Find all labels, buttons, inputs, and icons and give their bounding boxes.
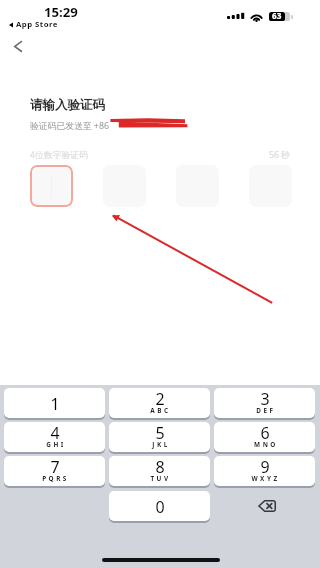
- staticText: PQRS: [42, 474, 69, 483]
- staticText: 4: [50, 422, 60, 444]
- staticText: JKL: [152, 440, 170, 449]
- staticText: ABC: [150, 406, 171, 415]
- staticText: 验证码已发送至 +86: [30, 120, 109, 132]
- staticText: DEF: [256, 406, 276, 415]
- button[interactable]: 4: [4, 422, 105, 452]
- staticText: App Store: [16, 19, 58, 30]
- staticText: TUV: [150, 474, 171, 483]
- button[interactable]: 9: [214, 456, 315, 486]
- staticText: MNO: [254, 440, 278, 449]
- staticText: 56 秒: [269, 149, 291, 161]
- staticText: 3: [260, 388, 270, 410]
- staticText: GHI: [46, 440, 66, 449]
- button[interactable]: 2: [109, 388, 210, 418]
- button[interactable]: 1: [4, 388, 105, 418]
- button[interactable]: 6: [214, 422, 315, 452]
- staticText: 4位数字验证码: [30, 149, 88, 161]
- staticText: 7: [50, 456, 60, 478]
- staticText: 6: [260, 422, 270, 444]
- staticText: WXYZ: [251, 474, 280, 483]
- staticText: 8: [155, 456, 165, 478]
- staticText: 1: [50, 393, 60, 415]
- staticText: 15:29: [44, 3, 78, 21]
- button[interactable]: 8: [109, 456, 210, 486]
- button[interactable]: 3: [214, 388, 315, 418]
- staticText: 63: [272, 10, 282, 19]
- button[interactable]: 5: [109, 422, 210, 452]
- button[interactable]: [30, 165, 73, 207]
- staticText: 9: [260, 456, 270, 478]
- staticText: 2: [155, 388, 165, 410]
- button[interactable]: Back: [2, 32, 34, 60]
- button[interactable]: 7: [4, 456, 105, 486]
- button[interactable]: Backspace: [214, 491, 315, 521]
- button[interactable]: 0: [109, 491, 210, 521]
- staticText: 请输入验证码: [30, 97, 105, 113]
- staticText: 0: [155, 496, 165, 518]
- staticText: 5: [155, 422, 165, 444]
